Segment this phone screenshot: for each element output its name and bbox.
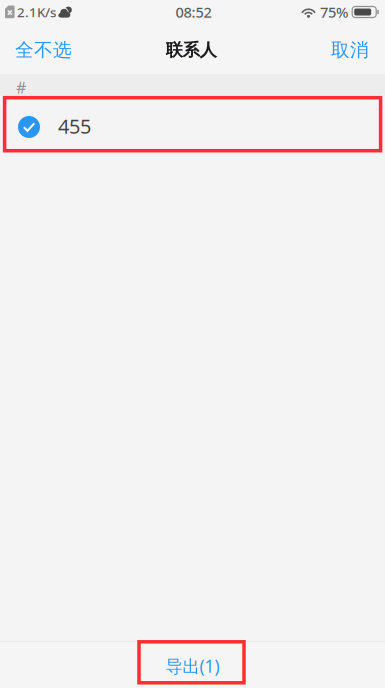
button[interactable]: 全不选 bbox=[0, 24, 87, 74]
staticText: 75% bbox=[320, 2, 348, 22]
staticText: 2.1K/s bbox=[17, 3, 56, 21]
button[interactable]: 455 bbox=[0, 96, 385, 156]
staticText: 导出(1) bbox=[165, 654, 219, 677]
staticText: 全不选 bbox=[15, 38, 72, 61]
staticText: # bbox=[16, 77, 26, 98]
staticText: 455 bbox=[58, 113, 91, 139]
button[interactable]: 取消 bbox=[315, 24, 385, 74]
button[interactable]: 导出(1) bbox=[0, 641, 385, 688]
staticText: 联系人 bbox=[165, 39, 216, 61]
staticText: 08:52 bbox=[175, 2, 211, 22]
staticText: 取消 bbox=[331, 38, 369, 61]
